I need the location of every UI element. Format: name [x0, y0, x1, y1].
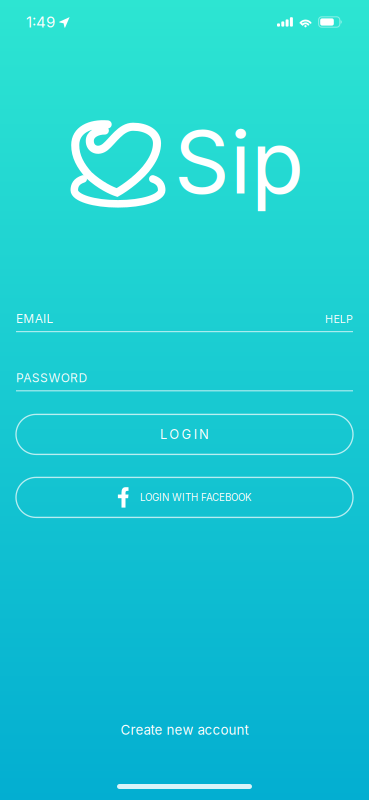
staticText: 1:49 [26, 13, 55, 31]
button[interactable]: LOGIN WITH FACEBOOK [16, 477, 353, 517]
button[interactable]: HELP [325, 313, 353, 326]
button[interactable]: Create new account [120, 716, 248, 744]
staticText: PASSWORD [16, 371, 87, 385]
staticText: HELP [325, 313, 353, 326]
staticText: EMAIL [16, 311, 53, 326]
staticText: LOGIN WITH FACEBOOK [140, 491, 252, 503]
button[interactable]: LOGIN [16, 414, 353, 454]
staticText: Sip [174, 110, 304, 214]
staticText: Create new account [120, 722, 248, 738]
staticText: LOGIN [160, 427, 209, 442]
